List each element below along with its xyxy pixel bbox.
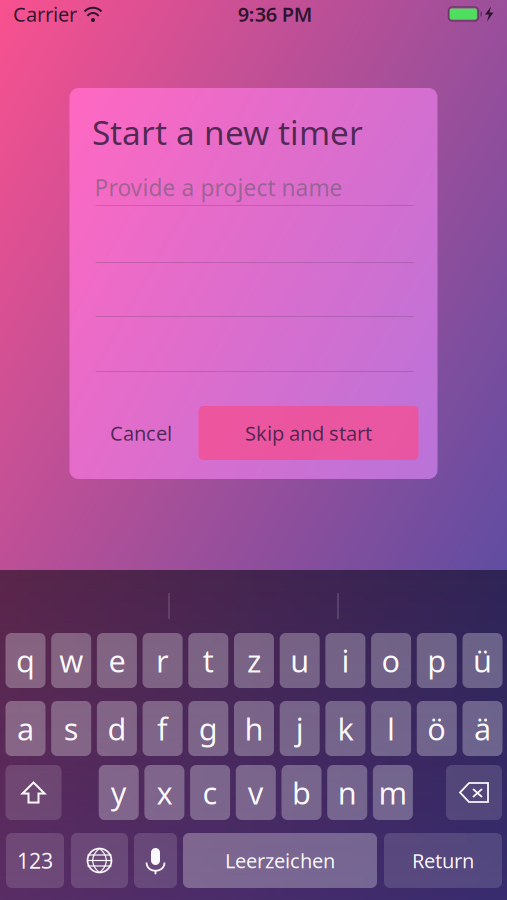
button[interactable]: ü [462, 633, 502, 688]
staticText: i [341, 640, 349, 681]
staticText: c [203, 772, 218, 813]
button[interactable]: Cancel [91, 406, 191, 460]
button[interactable]: o [371, 633, 411, 688]
staticText: a [17, 708, 34, 749]
button[interactable]: 123 [6, 833, 64, 888]
staticText: s [64, 708, 79, 749]
staticText: u [290, 640, 309, 681]
button[interactable]: Leerzeichen [183, 833, 377, 888]
button[interactable]: l [371, 701, 411, 756]
staticText: Skip and start [245, 420, 372, 446]
staticText: Carrier [13, 1, 77, 27]
staticText: b [292, 772, 311, 813]
staticText: v [248, 772, 264, 813]
staticText: o [382, 640, 401, 681]
button[interactable]: n [327, 765, 367, 820]
button[interactable]: ä [462, 701, 502, 756]
button[interactable]: b [281, 765, 321, 820]
staticText: f [157, 708, 168, 749]
button[interactable]: Skip and start [198, 406, 418, 460]
button[interactable]: z [234, 633, 274, 688]
button[interactable]: ö [417, 701, 457, 756]
button[interactable]: j [280, 701, 320, 756]
staticText: x [156, 772, 172, 813]
button[interactable]: w [51, 633, 91, 688]
staticText: n [338, 772, 357, 813]
staticText: m [378, 772, 407, 813]
button[interactable]: m [373, 765, 413, 820]
staticText: e [108, 640, 125, 681]
button[interactable]: Dictate [134, 833, 177, 888]
staticText: q [16, 640, 35, 681]
button[interactable]: k [325, 701, 365, 756]
staticText: 123 [17, 846, 53, 875]
button[interactable]: c [190, 765, 230, 820]
staticText: d [107, 708, 126, 749]
button[interactable]: p [417, 633, 457, 688]
button[interactable]: s [51, 701, 91, 756]
button[interactable]: a [5, 701, 45, 756]
button[interactable]: x [144, 765, 184, 820]
staticText: l [387, 708, 395, 749]
staticText: w [59, 640, 83, 681]
staticText: z [247, 640, 261, 681]
button[interactable]: f [143, 701, 183, 756]
staticText: 9:36 PM [238, 1, 313, 27]
button[interactable]: q [5, 633, 45, 688]
button[interactable]: g [188, 701, 228, 756]
button[interactable]: Delete [446, 765, 502, 820]
staticText: Leerzeichen [225, 847, 335, 874]
staticText: y [111, 772, 127, 813]
staticText: k [337, 708, 353, 749]
button[interactable]: Shift [5, 765, 61, 820]
button[interactable]: t [188, 633, 228, 688]
button[interactable]: h [234, 701, 274, 756]
staticText: Provide a project name [94, 172, 342, 202]
staticText: r [156, 640, 169, 681]
staticText: t [203, 640, 214, 681]
staticText: j [296, 708, 304, 749]
staticText: Cancel [110, 420, 172, 446]
button[interactable]: Return [384, 833, 502, 888]
button[interactable]: i [325, 633, 365, 688]
staticText: g [199, 708, 218, 749]
staticText: p [427, 640, 446, 681]
button[interactable]: Next keyboard [71, 833, 128, 888]
staticText: h [244, 708, 263, 749]
button[interactable]: e [97, 633, 137, 688]
staticText: Return [412, 847, 474, 874]
button[interactable]: u [280, 633, 320, 688]
staticText: ö [427, 708, 446, 749]
button[interactable]: v [236, 765, 276, 820]
button[interactable]: r [143, 633, 183, 688]
button[interactable]: d [97, 701, 137, 756]
staticText: ä [474, 708, 491, 749]
staticText: ü [473, 640, 492, 681]
staticText: Start a new timer [92, 110, 363, 154]
button[interactable]: y [99, 765, 139, 820]
